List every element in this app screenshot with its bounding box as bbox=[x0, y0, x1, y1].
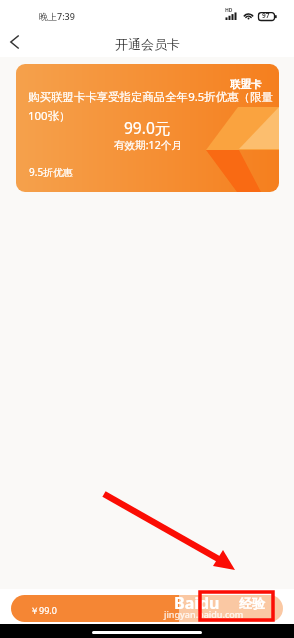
staticText: 9.5折优惠 bbox=[29, 165, 74, 179]
staticText: 97 bbox=[262, 11, 270, 20]
staticText: 晚上7:39 bbox=[39, 10, 75, 22]
staticText: Baidu bbox=[174, 592, 220, 614]
staticText: jingyan.baidu.com bbox=[164, 608, 244, 620]
button[interactable]: Back bbox=[1, 29, 27, 55]
staticText: 开通会员卡 bbox=[115, 36, 180, 52]
staticText: 有效期:12个月 bbox=[114, 138, 182, 152]
button[interactable]: ￥99.0 bbox=[11, 595, 283, 622]
button[interactable]: 联盟卡 bbox=[16, 64, 279, 192]
staticText: 99.0元 bbox=[124, 117, 171, 138]
staticText: 联盟卡 bbox=[230, 78, 262, 91]
staticText: 购买联盟卡卡享受指定商品全年9.5折优惠（限量100张） bbox=[28, 89, 279, 123]
staticText: 经验 bbox=[239, 595, 265, 611]
staticText: HD bbox=[225, 7, 233, 14]
staticText: ￥99.0 bbox=[30, 604, 57, 616]
